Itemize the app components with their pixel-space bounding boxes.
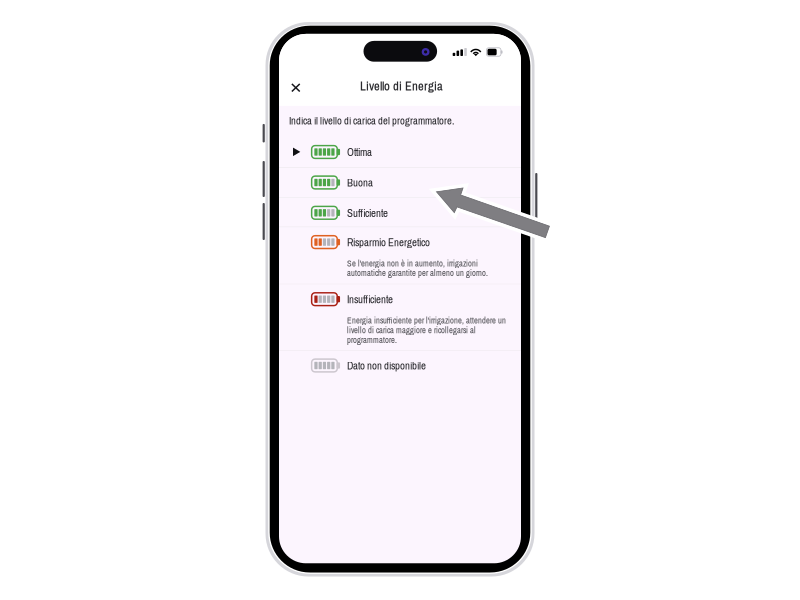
button[interactable]: Insufficiente xyxy=(279,284,521,350)
staticText: Insufficiente xyxy=(347,292,393,307)
button[interactable]: Ottima xyxy=(279,137,521,167)
staticText: Ottima xyxy=(347,145,372,159)
button[interactable]: Dato non disponibile xyxy=(279,350,521,380)
staticText: Sufficiente xyxy=(347,206,388,220)
button[interactable]: Close xyxy=(283,75,308,100)
staticText: Dato non disponibile xyxy=(347,358,426,373)
staticText: Risparmio Energetico xyxy=(347,235,430,249)
button[interactable]: Buona xyxy=(279,167,521,197)
staticText: Energia insufficiente per l'irrigazione,… xyxy=(347,315,506,345)
button[interactable]: Risparmio Energetico xyxy=(279,227,521,283)
staticText: Indica il livello di carica del programm… xyxy=(289,114,454,128)
button[interactable]: Sufficiente xyxy=(279,198,521,228)
staticText: Livello di Energia xyxy=(360,77,443,94)
staticText: Se l'energia non è in aumento, irrigazio… xyxy=(347,258,488,279)
staticText: Buona xyxy=(347,175,373,190)
